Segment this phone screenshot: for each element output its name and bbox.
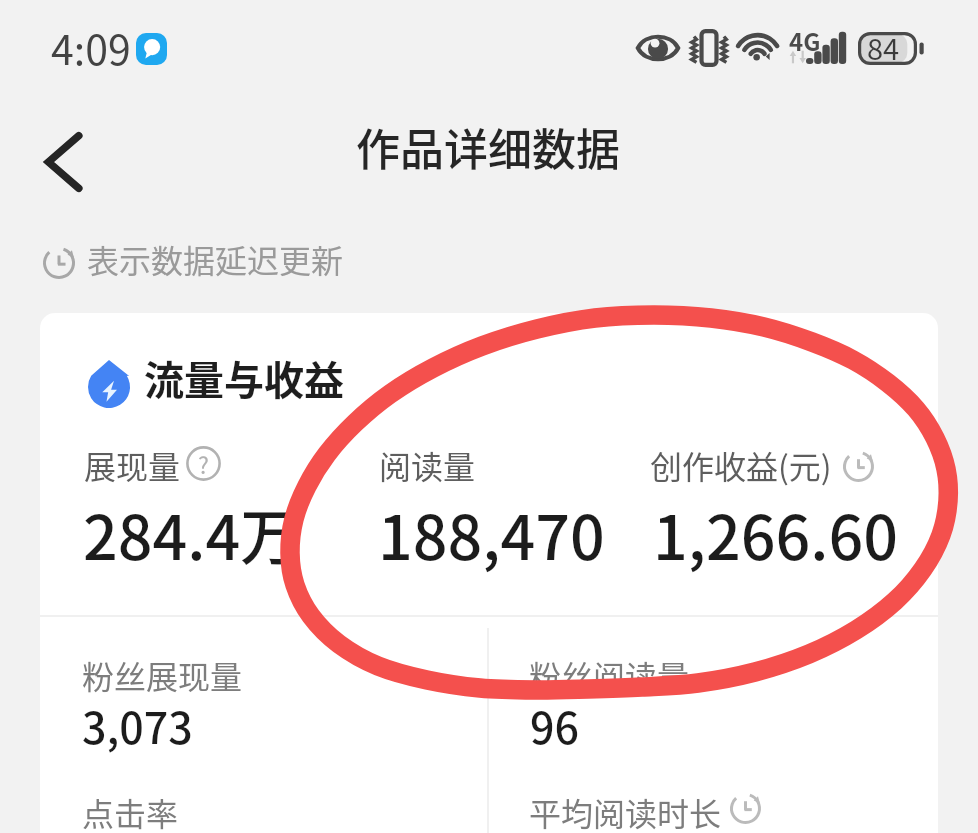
staticText: 粉丝阅读量 bbox=[529, 652, 690, 698]
staticText: 流量与收益 bbox=[144, 349, 344, 407]
staticText: 点击率 bbox=[82, 789, 179, 833]
staticText: 84 bbox=[867, 26, 900, 68]
staticText: ? bbox=[198, 447, 209, 480]
staticText: 作品详细数据 bbox=[356, 115, 620, 179]
staticText: 96 bbox=[530, 694, 580, 756]
staticText: 创作收益(元) bbox=[650, 442, 832, 488]
staticText: 展现量 bbox=[84, 442, 181, 488]
staticText: 4:09 bbox=[51, 17, 131, 76]
staticText: 3,073 bbox=[82, 694, 193, 756]
staticText: 阅读量 bbox=[379, 442, 476, 488]
staticText: 平均阅读时长 bbox=[529, 789, 722, 833]
staticText: 粉丝展现量 bbox=[82, 652, 243, 698]
staticText: 表示数据延迟更新 bbox=[87, 236, 344, 282]
button[interactable]: Back bbox=[30, 129, 96, 195]
staticText: 4G bbox=[789, 23, 821, 58]
staticText: 1,266.60 bbox=[653, 489, 898, 577]
staticText: 284.4万 bbox=[83, 489, 302, 577]
button[interactable] bbox=[40, 313, 938, 833]
staticText: 188,470 bbox=[378, 489, 605, 577]
